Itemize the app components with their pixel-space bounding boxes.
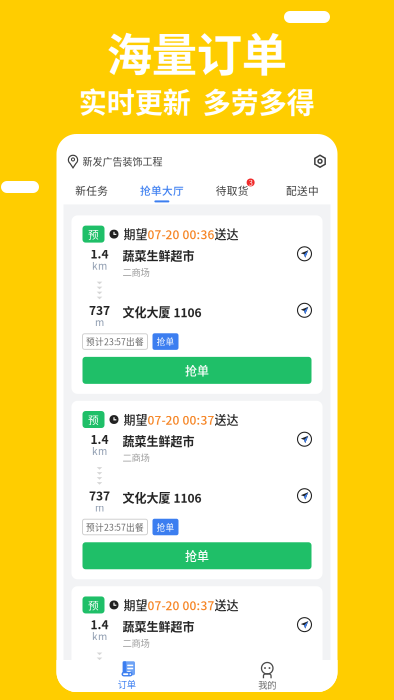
staticText: km xyxy=(92,258,107,273)
staticText: 送达 xyxy=(214,596,238,614)
staticText: 抢单 xyxy=(156,521,174,533)
staticText: 3 xyxy=(249,177,253,188)
staticText: 预计23:57出餐 xyxy=(86,521,144,533)
staticText: 蔬菜生鲜超市 xyxy=(122,247,194,264)
staticText: 我的 xyxy=(258,678,276,691)
staticText: 1.4 xyxy=(90,615,108,633)
staticText: 预 xyxy=(88,412,99,427)
staticText: 蔬菜生鲜超市 xyxy=(122,618,194,635)
staticText: 蔬菜生鲜超市 xyxy=(122,432,194,450)
staticText: km xyxy=(92,443,107,458)
staticText: 期望 xyxy=(123,596,147,614)
button[interactable]: 待取货 xyxy=(197,182,267,202)
button[interactable]: 新任务 xyxy=(56,182,127,202)
staticText: 737 xyxy=(89,301,110,318)
staticText: 二商场 xyxy=(122,451,149,464)
staticText: 抢单 xyxy=(156,335,174,348)
staticText: 737 xyxy=(89,486,110,504)
staticText: 预 xyxy=(88,597,99,613)
button[interactable]: 配送中 xyxy=(267,182,337,202)
staticText: 订单 xyxy=(118,677,136,691)
staticText: 1.4 xyxy=(90,430,108,447)
staticText: 送达 xyxy=(214,411,238,428)
staticText: m xyxy=(95,685,104,700)
staticText: m xyxy=(95,315,104,329)
staticText: 期望 xyxy=(123,411,147,428)
button[interactable]: 订单 xyxy=(56,660,197,691)
staticText: 预计23:57出餐 xyxy=(86,335,144,348)
staticText: 文化大厦 1106 xyxy=(122,489,201,506)
button[interactable]: 我的 xyxy=(197,660,337,691)
button[interactable]: 抢单 xyxy=(82,542,311,569)
staticText: 新发广告装饰工程 xyxy=(82,154,162,168)
staticText: m xyxy=(95,500,104,514)
staticText: 抢单 xyxy=(185,547,209,564)
staticText: 07-20 00:37 xyxy=(147,411,214,428)
staticText: 文化大厦 1106 xyxy=(122,303,201,321)
staticText: 配送中 xyxy=(286,182,319,198)
staticText: 待取货 xyxy=(216,182,249,198)
staticText: km xyxy=(92,629,107,643)
staticText: 抢单大厅 xyxy=(140,182,184,198)
staticText: 07-20 00:37 xyxy=(147,596,214,614)
staticText: 预 xyxy=(88,226,99,242)
button[interactable]: 设置 xyxy=(313,155,326,168)
staticText: 二商场 xyxy=(122,265,149,279)
staticText: 实时更新 多劳多得 xyxy=(79,81,315,121)
staticText: 二商场 xyxy=(122,636,149,649)
staticText: 抢单 xyxy=(185,362,209,379)
staticText: 1.4 xyxy=(90,245,108,262)
staticText: 送达 xyxy=(214,225,238,243)
button[interactable]: 抢单大厅 xyxy=(127,182,197,202)
button[interactable]: 抢单 xyxy=(82,357,311,384)
staticText: 文化大厦 1106 xyxy=(122,674,201,691)
staticText: 海量订单 xyxy=(107,19,287,85)
staticText: 期望 xyxy=(123,225,147,243)
staticText: 07-20 00:36 xyxy=(147,225,214,243)
staticText: 新任务 xyxy=(75,182,108,198)
